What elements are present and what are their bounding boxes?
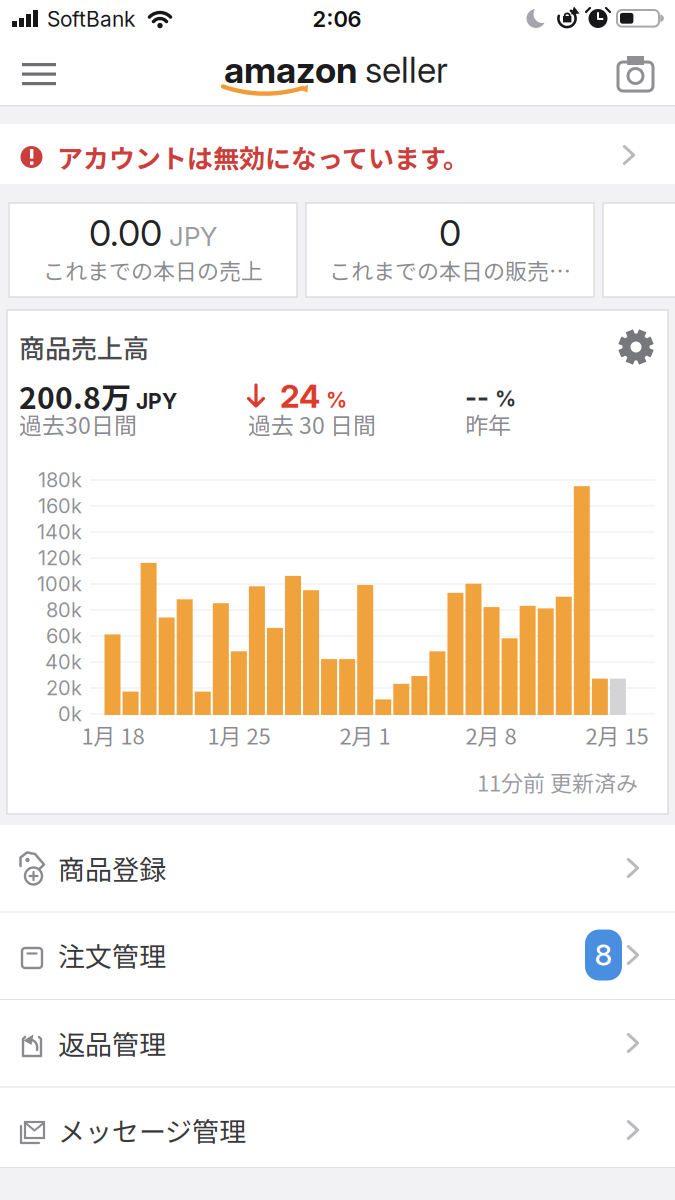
staticText: 180k	[38, 468, 82, 492]
staticText: 商品登録	[58, 848, 166, 888]
staticText: 商品売上高	[19, 328, 149, 366]
staticText: SoftBank	[47, 6, 135, 32]
staticText: 1月 18	[81, 719, 144, 751]
staticText: アカウントは無効になっています。	[57, 138, 469, 176]
staticText: 注文管理	[58, 935, 166, 975]
staticText: 11分前 更新済み	[477, 766, 638, 798]
staticText: 2月 8	[465, 719, 516, 751]
staticText: amazon	[224, 48, 357, 92]
staticText: 8	[594, 937, 612, 973]
staticText: 160k	[38, 494, 82, 518]
staticText: 過去 30 日間	[248, 407, 376, 441]
staticText: JPY	[169, 221, 217, 252]
staticText: 24	[280, 377, 320, 415]
staticText: 返品管理	[58, 1023, 166, 1063]
staticText: 0k	[58, 702, 82, 726]
staticText: これまでの本日の販売…	[329, 254, 571, 286]
staticText: %	[326, 387, 347, 413]
staticText: 2:06	[312, 6, 361, 32]
staticText: %	[495, 386, 516, 411]
staticText: これまでの本日の売上	[43, 254, 263, 286]
staticText: 40k	[45, 650, 82, 674]
staticText: 2月 1	[339, 719, 390, 751]
staticText: 140k	[37, 520, 82, 544]
staticText: 20k	[46, 676, 82, 700]
staticText: メッセージ管理	[58, 1110, 246, 1150]
staticText: 200.8万	[19, 374, 131, 418]
staticText: 0.00	[89, 211, 162, 255]
staticText: 60k	[46, 624, 82, 648]
staticText: 1月 25	[207, 719, 270, 751]
staticText: --	[465, 381, 489, 413]
staticText: JPY	[136, 389, 177, 414]
staticText: 120k	[38, 546, 82, 570]
staticText: 80k	[46, 598, 82, 622]
staticText: 0	[439, 211, 461, 255]
staticText: 過去30日間	[19, 407, 137, 441]
staticText: 2月 15	[585, 719, 648, 751]
staticText: seller	[365, 49, 448, 91]
staticText: 昨年	[465, 407, 511, 441]
staticText: 100k	[37, 572, 82, 596]
